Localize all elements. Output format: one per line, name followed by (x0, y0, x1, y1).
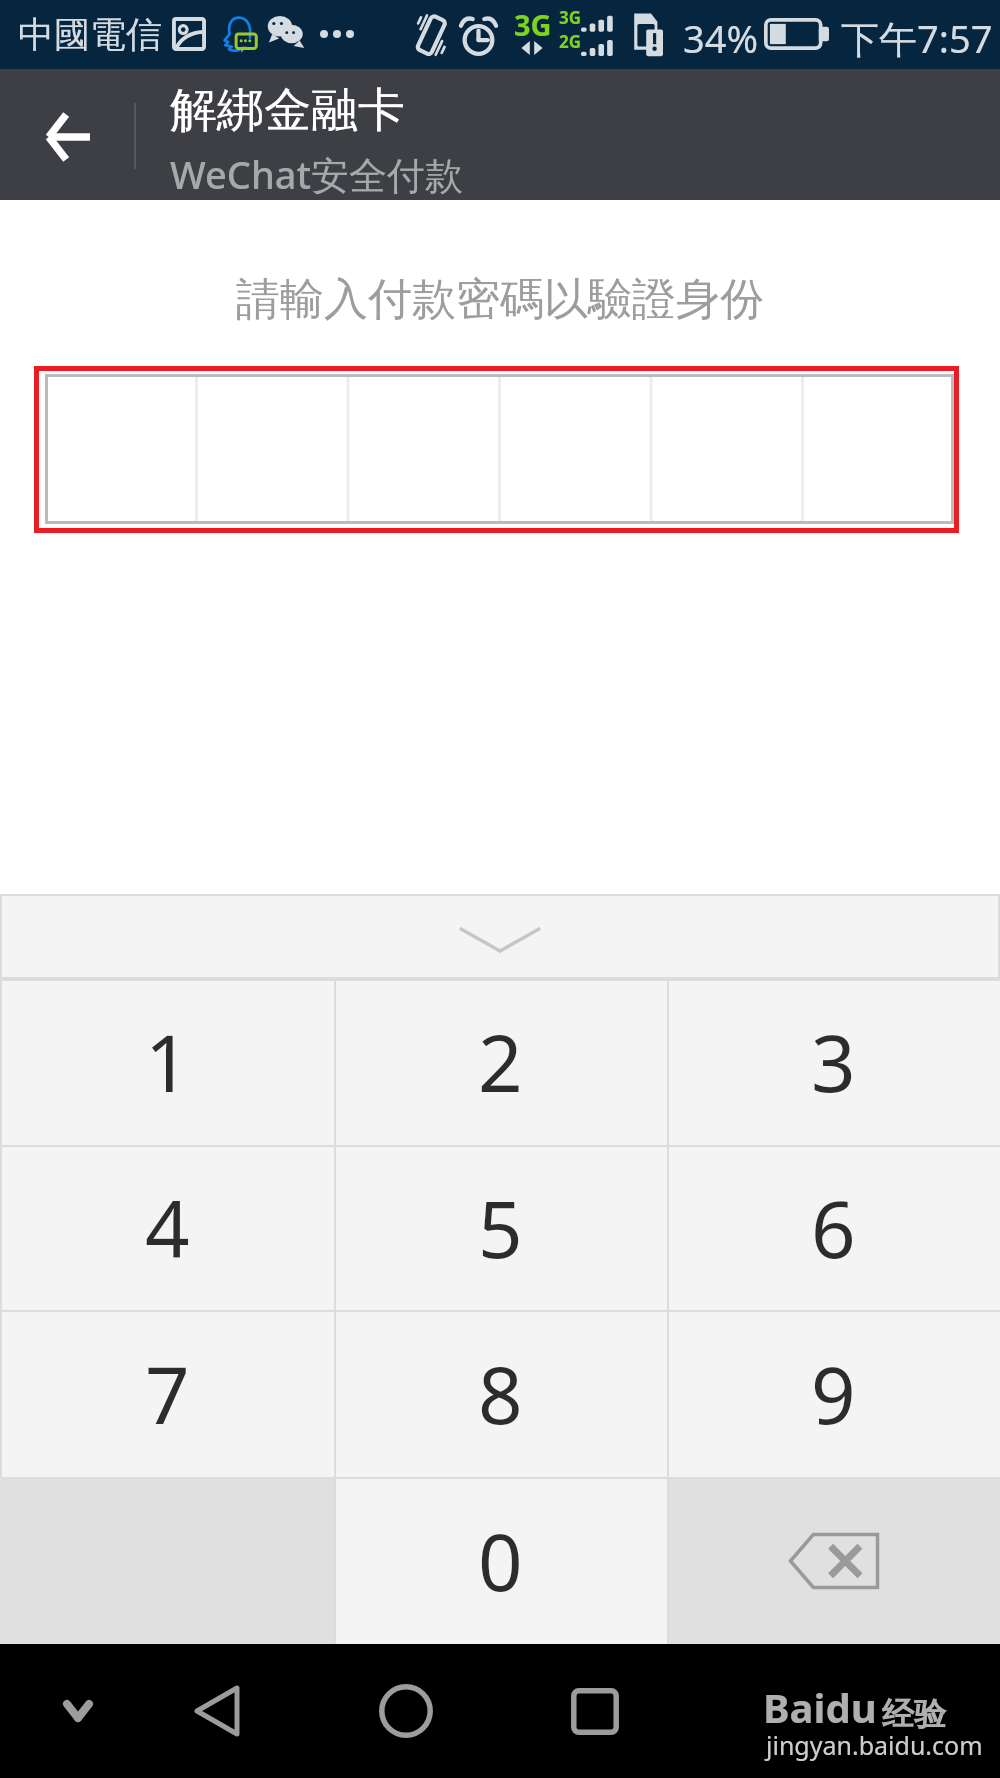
staticText: WeChat安全付款 (170, 148, 464, 200)
staticText: 9 (811, 1341, 856, 1447)
staticText: 3 (811, 1009, 856, 1115)
button[interactable]: 0 (334, 1477, 667, 1644)
button[interactable]: Recents (550, 1644, 640, 1778)
button[interactable]: 5 (334, 1145, 667, 1310)
staticText: 经验 (882, 1694, 946, 1734)
staticText: 2G (559, 30, 582, 53)
button[interactable]: Home (361, 1644, 451, 1778)
button[interactable]: 7 (0, 1310, 334, 1477)
button[interactable]: 9 (667, 1310, 1000, 1477)
staticText: 1 (145, 1009, 190, 1115)
button[interactable]: Hide keyboard (0, 894, 1000, 979)
button[interactable]: 6 (667, 1145, 1000, 1310)
staticText: 2 (478, 1009, 523, 1115)
button[interactable]: Back (0, 69, 134, 200)
staticText: 34% (683, 12, 759, 64)
staticText: Baidu (763, 1680, 877, 1734)
staticText: 8 (478, 1341, 523, 1447)
button[interactable]: Back (172, 1644, 262, 1778)
staticText: 4 (145, 1175, 190, 1281)
staticText: 5 (478, 1175, 523, 1281)
staticText: 3G (559, 6, 582, 29)
staticText: 6 (811, 1175, 856, 1281)
button[interactable]: Payment password input (45, 374, 954, 524)
button[interactable]: 8 (334, 1310, 667, 1477)
staticText: 下午7:57 (841, 12, 993, 64)
button[interactable]: 4 (0, 1145, 334, 1310)
button[interactable]: Hide (33, 1644, 123, 1778)
staticText: 中國電信 (18, 12, 162, 57)
button[interactable]: Delete (667, 1477, 1000, 1644)
button[interactable]: 3 (667, 979, 1000, 1145)
staticText: 解綁金融卡 (170, 81, 405, 140)
staticText: 7 (145, 1341, 190, 1447)
staticText: 0 (478, 1508, 523, 1614)
staticText: 3G (514, 5, 552, 44)
staticText: 請輸入付款密碼以驗證身份 (0, 272, 1000, 327)
button[interactable]: 2 (334, 979, 667, 1145)
button[interactable]: 1 (0, 979, 334, 1145)
staticText: jingyan.baidu.com (766, 1728, 983, 1762)
